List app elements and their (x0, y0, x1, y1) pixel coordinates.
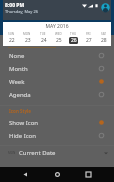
other: Account (101, 3, 110, 12)
staticText: 22 (9, 37, 15, 44)
staticText: 25 (56, 37, 62, 44)
staticText: Show Icon (9, 119, 39, 127)
staticText: MAY 2016 (3, 23, 111, 30)
staticText: Icon Style (9, 108, 32, 114)
staticText: 27 (86, 37, 92, 44)
button[interactable]: None (0, 49, 114, 62)
staticText: None (9, 52, 25, 60)
staticText: THU (70, 32, 77, 36)
staticText: MON (8, 151, 16, 155)
staticText: TUE (40, 32, 46, 36)
staticText: 8:00 PM (5, 2, 25, 9)
staticText: Current Date (19, 149, 56, 157)
staticText: 28 (101, 37, 107, 44)
staticText: Thursday, May 26 (5, 9, 38, 14)
button[interactable]: Month (0, 62, 114, 75)
staticText: SAT (101, 32, 107, 36)
button[interactable]: MON (0, 146, 114, 159)
staticText: 26 (71, 37, 77, 44)
staticText: MON (23, 32, 31, 36)
button[interactable]: Hide Icon (0, 129, 114, 142)
staticText: SUN (8, 32, 15, 36)
button[interactable]: Agenda (0, 88, 114, 101)
button[interactable]: Week (0, 75, 114, 88)
staticText: Hide Icon (9, 132, 36, 140)
staticText: 24 (41, 37, 47, 44)
staticText: WED (55, 32, 62, 36)
button[interactable]: Back (18, 167, 33, 182)
staticText: 23 (25, 37, 31, 44)
staticText: FRI (86, 32, 91, 36)
staticText: Month (9, 65, 28, 73)
button[interactable]: Show Icon (0, 116, 114, 129)
button[interactable]: Home (50, 167, 65, 182)
button[interactable]: Recent apps (81, 167, 96, 182)
staticText: Week (9, 78, 25, 86)
staticText: Agenda (9, 91, 31, 99)
